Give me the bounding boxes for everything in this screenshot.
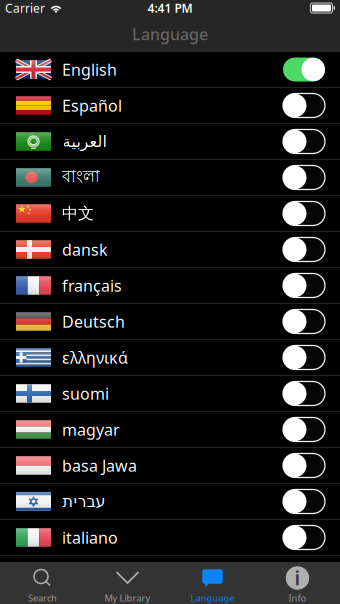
button[interactable]: ελληνικά xyxy=(0,340,340,376)
button[interactable]: עברית xyxy=(0,484,340,520)
button[interactable]: Language xyxy=(170,562,255,604)
button[interactable]: suomi xyxy=(0,376,340,412)
button[interactable]: English xyxy=(0,52,340,88)
staticText: עברית xyxy=(62,492,105,511)
staticText: magyar xyxy=(62,419,120,440)
staticText: 4:41 PM xyxy=(147,0,192,16)
staticText: basa Jawa xyxy=(62,455,137,476)
staticText: ελληνικά xyxy=(62,347,128,368)
button[interactable]: i xyxy=(255,562,340,604)
button[interactable]: العربية xyxy=(0,124,340,160)
staticText: i xyxy=(294,564,300,591)
staticText: Info xyxy=(288,592,306,604)
button[interactable]: Español xyxy=(0,88,340,124)
staticText: français xyxy=(62,275,122,296)
staticText: العربية xyxy=(62,132,106,151)
button[interactable]: My Library xyxy=(85,562,170,604)
staticText: My Library xyxy=(104,592,150,604)
staticText: Search xyxy=(28,592,57,604)
button[interactable]: basa Jawa xyxy=(0,448,340,484)
button[interactable]: Deutsch xyxy=(0,304,340,340)
button[interactable]: dansk xyxy=(0,232,340,268)
staticText: italiano xyxy=(62,527,118,548)
staticText: dansk xyxy=(62,239,108,260)
staticText: Español xyxy=(62,95,122,116)
button[interactable]: বাংলা xyxy=(0,160,340,196)
staticText: 中文 xyxy=(62,204,94,223)
staticText: Deutsch xyxy=(62,311,125,332)
staticText: suomi xyxy=(62,383,109,404)
button[interactable]: italiano xyxy=(0,520,340,556)
staticText: English xyxy=(62,59,117,80)
button[interactable]: magyar xyxy=(0,412,340,448)
staticText: বাংলা xyxy=(62,166,100,188)
button[interactable]: français xyxy=(0,268,340,304)
button[interactable]: Search xyxy=(0,562,85,604)
staticText: Language xyxy=(132,23,208,45)
button[interactable]: 中文 xyxy=(0,196,340,232)
staticText: Language xyxy=(190,592,234,604)
staticText: Carrier xyxy=(5,0,45,16)
